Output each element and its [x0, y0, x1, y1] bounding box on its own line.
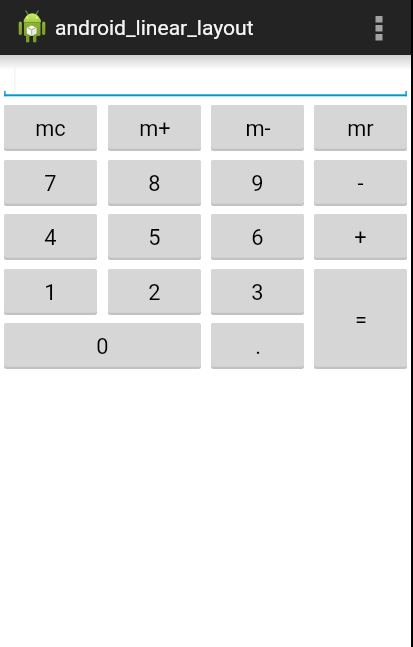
- staticText: +: [354, 225, 367, 251]
- button[interactable]: 7: [4, 160, 97, 206]
- button[interactable]: 1: [4, 269, 97, 315]
- button[interactable]: More options: [358, 0, 402, 55]
- button[interactable]: =: [314, 269, 407, 369]
- button[interactable]: 3: [211, 269, 304, 315]
- staticText: m+: [139, 116, 171, 142]
- button[interactable]: 4: [4, 214, 97, 260]
- button[interactable]: m-: [211, 105, 304, 151]
- button[interactable]: mc: [4, 105, 97, 151]
- staticText: 1: [44, 280, 57, 306]
- staticText: 2: [148, 280, 161, 306]
- staticText: 6: [251, 225, 264, 251]
- button[interactable]: -: [314, 160, 407, 206]
- staticText: -: [357, 171, 364, 197]
- staticText: android_linear_layout: [55, 15, 254, 40]
- button[interactable]: 0: [4, 323, 201, 369]
- button[interactable]: 6: [211, 214, 304, 260]
- staticText: 0: [96, 334, 109, 360]
- staticText: 8: [148, 171, 161, 197]
- staticText: 9: [251, 171, 264, 197]
- button[interactable]: 2: [108, 269, 201, 315]
- staticText: 5: [148, 225, 161, 251]
- staticText: 4: [44, 225, 57, 251]
- staticText: 7: [44, 171, 57, 197]
- staticText: m-: [245, 116, 271, 142]
- staticText: 3: [251, 280, 264, 306]
- button[interactable]: .: [211, 323, 304, 369]
- button[interactable]: [0, 55, 413, 97]
- button[interactable]: m+: [108, 105, 201, 151]
- button[interactable]: mr: [314, 105, 407, 151]
- staticText: mc: [35, 116, 66, 142]
- staticText: mr: [347, 116, 374, 142]
- button[interactable]: 8: [108, 160, 201, 206]
- button[interactable]: 5: [108, 214, 201, 260]
- staticText: .: [255, 334, 261, 360]
- button[interactable]: 9: [211, 160, 304, 206]
- staticText: =: [355, 307, 367, 333]
- button[interactable]: +: [314, 214, 407, 260]
